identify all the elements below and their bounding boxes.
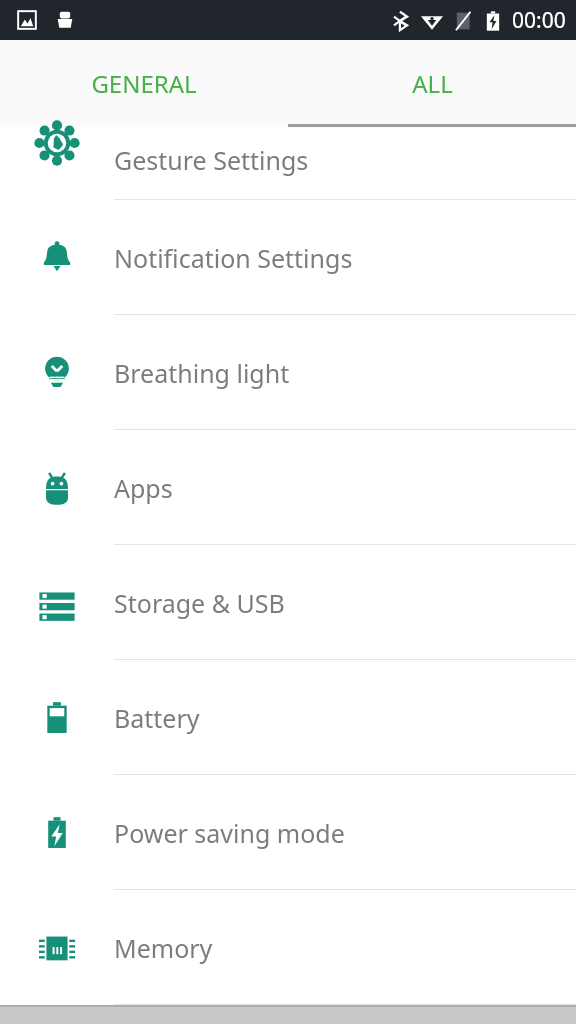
staticText: Power saving mode <box>114 816 345 850</box>
button[interactable]: Battery <box>0 660 576 775</box>
button[interactable]: Breathing light <box>0 315 576 430</box>
staticText: Battery <box>114 701 200 735</box>
staticText: GENERAL <box>91 67 197 100</box>
other: Breathing light <box>35 351 79 395</box>
other: Battery <box>35 696 79 740</box>
staticText: Apps <box>114 471 173 505</box>
other: Storage & USB <box>35 581 79 625</box>
staticText: Gesture Settings <box>114 143 309 177</box>
button[interactable]: GENERAL <box>0 40 288 127</box>
staticText: ALL <box>412 67 453 100</box>
staticText: Storage & USB <box>114 586 285 620</box>
button[interactable]: Notification Settings <box>0 200 576 315</box>
button[interactable]: Gesture Settings <box>0 127 576 200</box>
button[interactable]: Apps <box>0 430 576 545</box>
other: Notification Settings <box>35 236 79 280</box>
other: Gesture Settings <box>35 121 79 165</box>
staticText: 00:00 <box>512 6 566 35</box>
staticText: Notification Settings <box>114 241 353 275</box>
other: Apps <box>35 466 79 510</box>
button[interactable]: Memory <box>0 890 576 1005</box>
other: Power saving mode <box>35 811 79 855</box>
button[interactable]: Power saving mode <box>0 775 576 890</box>
other: Memory <box>35 926 79 970</box>
staticText: Memory <box>114 931 213 965</box>
button[interactable]: Storage & USB <box>0 545 576 660</box>
staticText: Breathing light <box>114 356 290 390</box>
button[interactable]: ALL <box>288 40 576 127</box>
